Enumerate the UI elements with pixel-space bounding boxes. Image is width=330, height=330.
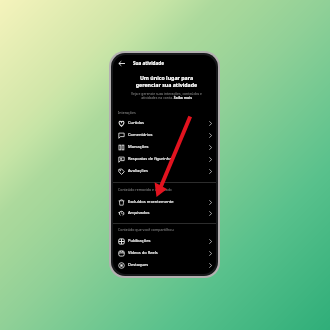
staticText: Um único lugar para gerenciar sua ativid… — [119, 74, 214, 89]
button[interactable]: Back — [118, 60, 125, 67]
button[interactable]: Respostas de figurinhas — [113, 153, 216, 165]
staticText: Vídeos do Reels — [128, 250, 209, 256]
staticText: Destaques — [128, 262, 209, 268]
button[interactable]: Destaques — [113, 259, 216, 271]
button[interactable]: Avaliações — [113, 165, 216, 177]
button[interactable]: Vídeos do Reels — [113, 247, 216, 259]
staticText: Sua atividade — [133, 60, 164, 66]
button[interactable]: Curtidas — [113, 117, 216, 129]
staticText: Marcações — [128, 144, 209, 150]
staticText: Avaliações — [128, 168, 209, 174]
button[interactable]: Publicações — [113, 235, 216, 247]
staticText: Excluídos recentemente — [128, 199, 209, 205]
staticText: Comentários — [128, 132, 209, 138]
staticText: Conteúdo removido e arquivado — [118, 187, 172, 192]
staticText: Conteúdo que você compartilhou — [118, 227, 174, 232]
staticText: Publicações — [128, 238, 209, 244]
staticText: Veja e gerencie suas interações, conteúd… — [123, 91, 210, 100]
staticText: Curtidas — [128, 120, 209, 126]
button[interactable]: Arquivados — [113, 207, 216, 219]
staticText: Interações — [118, 110, 136, 115]
button[interactable]: Comentários — [113, 129, 216, 141]
staticText: Arquivados — [128, 210, 209, 216]
button[interactable]: Marcações — [113, 141, 216, 153]
staticText: Respostas de figurinhas — [128, 156, 209, 162]
button[interactable]: Excluídos recentemente — [113, 196, 216, 208]
